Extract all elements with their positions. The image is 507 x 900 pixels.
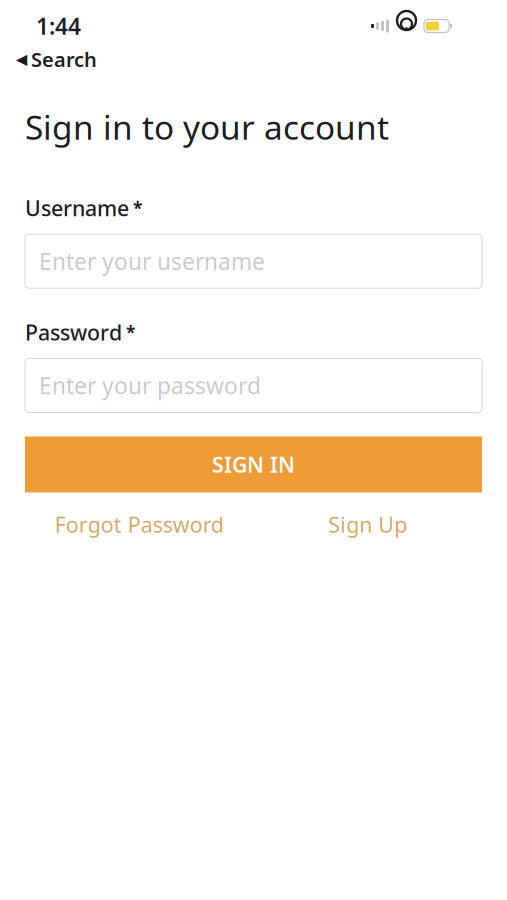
staticText: Sign in to your account xyxy=(25,105,389,149)
button[interactable]: ◀ xyxy=(12,44,101,75)
button[interactable]: Sign Up xyxy=(253,504,482,544)
button[interactable]: SIGN IN xyxy=(25,436,482,492)
button[interactable]: Forgot Password xyxy=(25,504,253,544)
staticText: Enter your username xyxy=(39,246,265,276)
staticText: 1:44 xyxy=(36,11,81,41)
staticText: ◀ xyxy=(16,51,27,68)
staticText: * xyxy=(133,196,142,219)
staticText: SIGN IN xyxy=(212,450,295,479)
staticText: Username xyxy=(25,194,129,222)
staticText: Enter your password xyxy=(39,370,261,400)
staticText: Search xyxy=(31,46,97,73)
staticText: Forgot Password xyxy=(55,510,224,539)
staticText: Sign Up xyxy=(328,510,407,539)
staticText: * xyxy=(126,321,135,344)
staticText: Password xyxy=(25,318,122,346)
